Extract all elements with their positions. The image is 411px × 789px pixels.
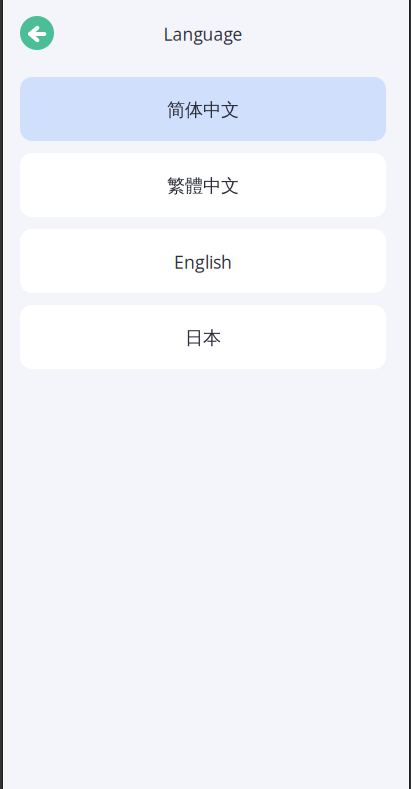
button[interactable]: 繁體中文 [20,153,386,217]
button[interactable]: English [20,229,386,293]
staticText: English [174,250,232,274]
button[interactable]: 日本 [20,305,386,369]
staticText: 繁體中文 [167,175,239,197]
staticText: 日本 [185,327,221,349]
button[interactable]: 简体中文 [20,77,386,141]
staticText: Language [163,22,242,46]
button[interactable]: Back [20,16,54,50]
staticText: 简体中文 [167,99,239,121]
